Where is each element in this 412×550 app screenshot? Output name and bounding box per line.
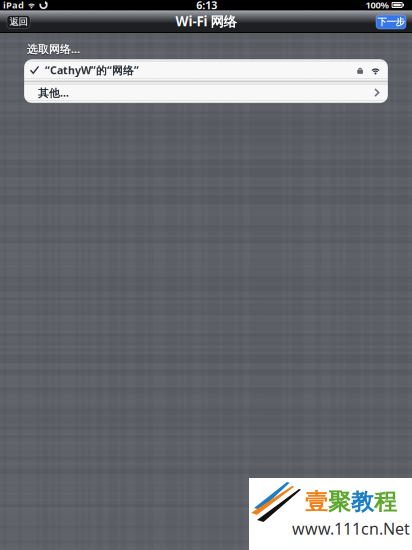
staticText: 下一步 [377,16,404,28]
button[interactable]: 其他... [24,82,388,103]
staticText: 程 [374,488,397,516]
staticText: 选取网络... [27,42,80,56]
staticText: 聚 [328,488,351,516]
button[interactable]: 下一步 [376,15,406,29]
staticText: 其他... [38,86,69,100]
staticText: 返回 [9,16,27,28]
staticText: 教 [351,488,374,516]
button[interactable]: “CathyW”的“网络” [24,59,388,81]
staticText: “CathyW”的“网络” [45,63,139,77]
button[interactable]: 返回 [7,15,30,28]
staticText: 选取网络... [27,43,80,57]
staticText: www.111cn.Net [292,518,410,539]
staticText: 100% [366,0,389,11]
staticText: Wi-Fi 网络 [175,12,236,30]
staticText: iPad [3,0,24,11]
staticText: 壹 [305,488,328,516]
staticText: 6:13 [196,0,217,12]
